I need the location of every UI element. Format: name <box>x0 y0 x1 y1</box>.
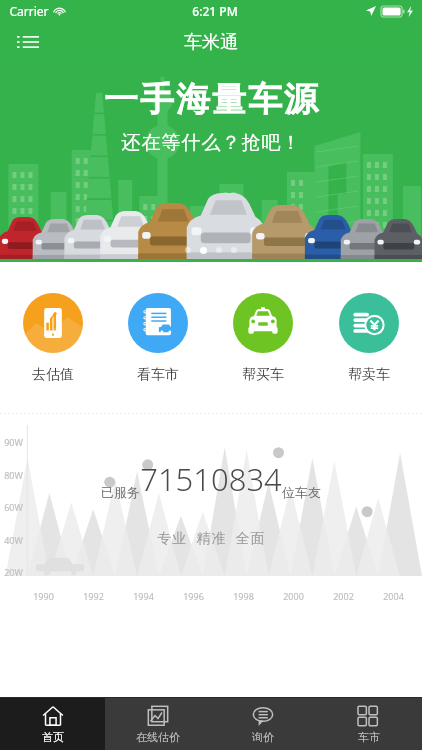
staticText: 看车市 <box>137 366 179 384</box>
staticText: 位车友 <box>282 484 321 500</box>
staticText: 一手海量车源 <box>103 78 319 121</box>
staticText: 帮卖车 <box>348 366 390 384</box>
button[interactable]: Menu <box>8 22 48 62</box>
staticText: 71510834 <box>140 458 282 500</box>
staticText: Carrier <box>9 3 49 19</box>
staticText: 1998 <box>233 590 254 602</box>
staticText: 90W <box>4 436 23 448</box>
staticText: 车米通 <box>184 31 238 54</box>
button[interactable]: 在线估价 <box>105 698 210 750</box>
button[interactable]: 车市 <box>316 698 422 750</box>
staticText: 80W <box>4 469 23 481</box>
staticText: 在线估价 <box>136 730 180 744</box>
staticText: 帮买车 <box>242 366 284 384</box>
staticText: 1990 <box>33 590 54 602</box>
staticText: 还在等什么？抢吧！ <box>121 131 301 155</box>
staticText: 6:21 PM <box>192 3 238 19</box>
staticText: 车市 <box>358 730 380 744</box>
staticText: 已服务 <box>101 484 140 500</box>
staticText: 20W <box>4 566 23 578</box>
button[interactable]: 帮买车 <box>210 263 316 413</box>
button[interactable]: 询价 <box>210 698 316 750</box>
staticText: 首页 <box>42 730 64 744</box>
staticText: 去估值 <box>32 366 74 384</box>
staticText: 1996 <box>183 590 204 602</box>
staticText: 专业 精准 全面 <box>157 528 266 547</box>
staticText: 60W <box>4 501 23 513</box>
staticText: 1992 <box>83 590 104 602</box>
staticText: 2002 <box>333 590 354 602</box>
button[interactable]: 帮卖车 <box>316 263 422 413</box>
staticText: 1994 <box>133 590 154 602</box>
button[interactable]: 看车市 <box>105 263 210 413</box>
staticText: 询价 <box>252 730 274 744</box>
button[interactable]: 去估值 <box>0 263 105 413</box>
button[interactable]: 首页 <box>0 698 105 750</box>
staticText: 2004 <box>383 590 404 602</box>
staticText: 40W <box>4 534 23 546</box>
staticText: 2000 <box>283 590 304 602</box>
